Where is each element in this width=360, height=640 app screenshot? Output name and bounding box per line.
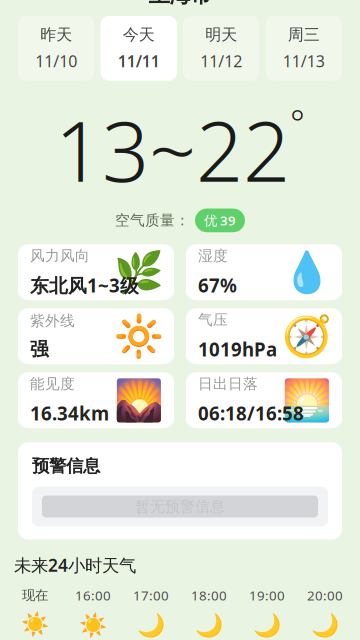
- staticText: 优 39: [204, 211, 236, 229]
- button[interactable]: 昨天: [18, 16, 94, 81]
- staticText: 周三: [288, 25, 320, 45]
- staticText: 气压: [198, 311, 228, 329]
- button[interactable]: 🌅: [186, 372, 342, 428]
- button[interactable]: 今天: [100, 16, 177, 81]
- staticText: 上海市: [148, 0, 211, 8]
- button[interactable]: 🧭: [186, 308, 342, 364]
- staticText: °: [290, 99, 305, 145]
- staticText: 🔆: [114, 313, 164, 359]
- staticText: 19:00: [249, 586, 285, 604]
- staticText: 强: [30, 338, 49, 361]
- staticText: 11/13: [283, 50, 325, 72]
- staticText: 风力风向: [30, 247, 90, 265]
- button[interactable]: 💧: [186, 244, 342, 300]
- staticText: 18:00: [191, 586, 227, 604]
- staticText: 东北风1~3级: [30, 273, 139, 298]
- staticText: 今天: [123, 25, 155, 45]
- staticText: 🌿: [114, 249, 164, 295]
- staticText: 预警信息: [32, 455, 100, 476]
- staticText: 🌙: [137, 612, 165, 638]
- staticText: 🌙: [311, 612, 339, 638]
- staticText: 11/11: [118, 50, 160, 72]
- staticText: 未来24小时天气: [14, 553, 136, 576]
- staticText: 💧: [282, 249, 332, 295]
- staticText: 🌙: [195, 612, 223, 638]
- staticText: 能见度: [30, 375, 75, 393]
- staticText: 昨天: [40, 25, 72, 45]
- staticText: 🌙: [253, 612, 281, 638]
- staticText: 🌄: [114, 377, 164, 423]
- staticText: 🌅: [282, 377, 332, 423]
- staticText: 🧭: [282, 313, 332, 359]
- staticText: 13~22: [55, 95, 290, 205]
- staticText: ☀️: [21, 612, 49, 637]
- button[interactable]: 明天: [183, 16, 259, 81]
- staticText: 16.34km: [30, 401, 109, 426]
- staticText: 日出日落: [198, 375, 258, 393]
- staticText: 67%: [198, 273, 237, 298]
- staticText: 17:00: [133, 586, 169, 604]
- staticText: 16:00: [75, 586, 111, 604]
- staticText: 06:18/16:58: [198, 401, 304, 426]
- staticText: 紫外线: [30, 312, 75, 330]
- button[interactable]: 周三: [265, 16, 342, 81]
- staticText: 空气质量：: [115, 211, 190, 229]
- staticText: 明天: [205, 25, 237, 45]
- staticText: 20:00: [307, 586, 343, 604]
- button[interactable]: 🔆: [18, 308, 174, 364]
- staticText: 现在: [22, 587, 48, 604]
- staticText: 11/12: [200, 50, 242, 72]
- button[interactable]: 🌄: [18, 372, 174, 428]
- staticText: ☀️: [79, 612, 107, 638]
- staticText: 暂无预警信息: [135, 497, 225, 515]
- staticText: 1019hPa: [198, 337, 277, 362]
- staticText: 11/10: [35, 50, 77, 72]
- button[interactable]: 🌿: [18, 244, 174, 300]
- staticText: 湿度: [198, 247, 228, 265]
